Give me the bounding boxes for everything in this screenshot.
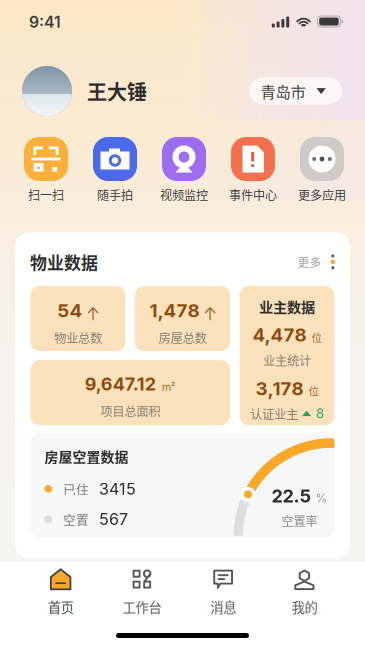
staticText: 房屋总数: [158, 329, 206, 347]
staticText: 567: [99, 509, 128, 529]
staticText: 22.5: [271, 485, 311, 507]
staticText: 更多: [298, 253, 322, 270]
button[interactable]: 我的: [264, 568, 345, 616]
staticText: 业主数据: [259, 296, 315, 317]
staticText: 王大锤: [87, 76, 147, 105]
staticText: 房屋空置数据: [44, 446, 128, 466]
staticText: 8: [316, 406, 324, 421]
staticText: 9,647.12: [85, 373, 156, 395]
button[interactable]: 青岛市: [249, 77, 342, 104]
staticText: 认证业主: [250, 405, 298, 423]
button[interactable]: 更多应用: [287, 137, 356, 204]
staticText: 随手拍: [97, 186, 133, 204]
staticText: 更多应用: [298, 186, 346, 204]
staticText: 项目总面积: [100, 402, 160, 420]
staticText: 位: [308, 383, 318, 398]
button[interactable]: 首页: [20, 568, 101, 616]
staticText: 4,478: [252, 323, 306, 346]
staticText: 业主统计: [263, 351, 311, 369]
button[interactable]: 消息: [182, 568, 264, 616]
staticText: 位: [311, 330, 321, 345]
button[interactable]: 扫一扫: [11, 137, 80, 204]
staticText: 物业数据: [30, 250, 98, 274]
staticText: 3415: [99, 479, 136, 498]
staticText: 工作台: [122, 597, 161, 616]
staticText: 我的: [291, 597, 317, 616]
staticText: %: [315, 491, 327, 505]
button[interactable]: 视频监控: [149, 137, 218, 204]
staticText: 空置率: [281, 512, 317, 529]
button[interactable]: 工作台: [101, 568, 182, 616]
staticText: 物业总数: [54, 329, 102, 347]
staticText: 扫一扫: [28, 186, 64, 204]
staticText: 青岛市: [260, 80, 305, 102]
button[interactable]: 随手拍: [80, 137, 149, 204]
staticText: 9:41: [29, 12, 61, 31]
staticText: 视频监控: [160, 186, 208, 204]
button[interactable]: 事件中心: [218, 137, 287, 204]
staticText: 空置: [63, 510, 89, 528]
staticText: 消息: [210, 597, 236, 616]
staticText: 3,178: [255, 377, 303, 400]
button[interactable]: 更多: [298, 253, 335, 270]
staticText: m²: [162, 380, 176, 393]
staticText: 事件中心: [229, 186, 277, 204]
staticText: 首页: [48, 597, 74, 616]
staticText: 1,478: [149, 299, 199, 322]
staticText: 已住: [63, 480, 89, 498]
staticText: 54: [57, 299, 82, 322]
